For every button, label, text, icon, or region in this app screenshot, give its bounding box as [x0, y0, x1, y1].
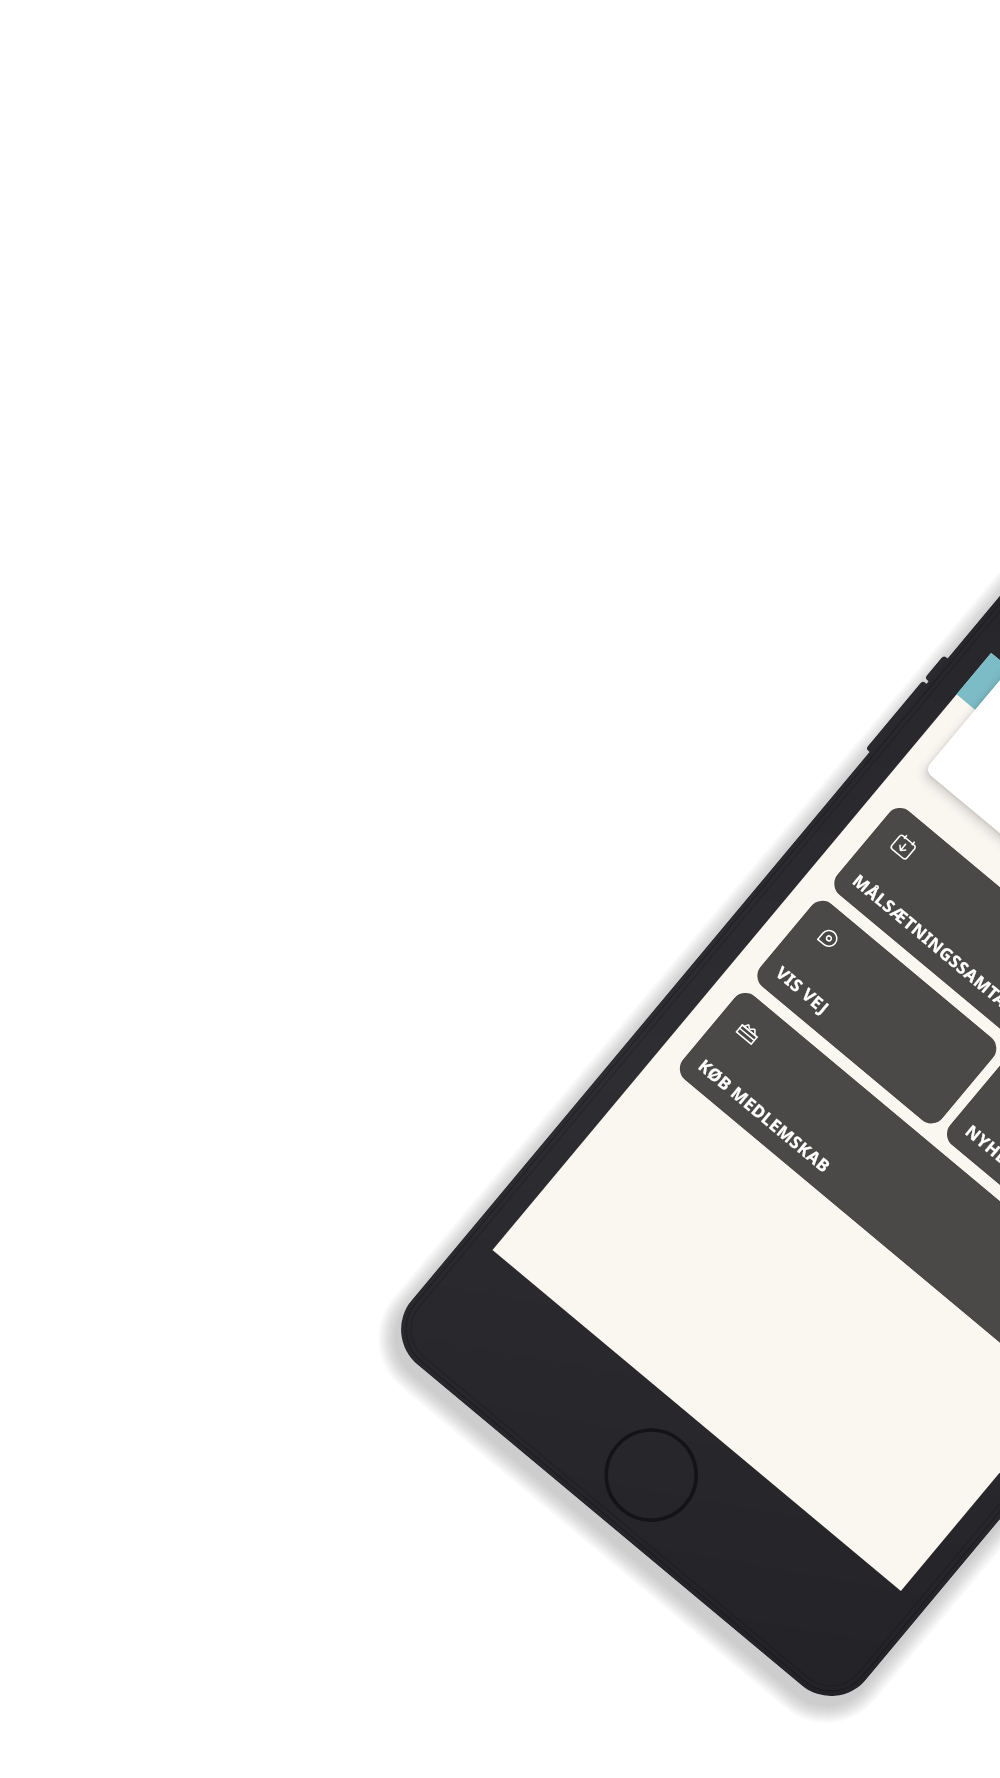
staticText: NYHEDER — [961, 1119, 1000, 1191]
button[interactable]: VIS VEJ — [751, 895, 1000, 1129]
button[interactable]: KØB MEDLEMSKAB — [674, 987, 1000, 1381]
staticText: KØB MEDLEMSKAB — [694, 1054, 836, 1178]
button[interactable] — [924, 658, 1000, 1081]
staticText: MÅLSÆTNINGSSAMTALE — [848, 869, 1000, 1025]
button[interactable]: MÅLSÆTNINGSSAMTALE — [828, 802, 1000, 1037]
staticText: VIS VEJ — [771, 961, 834, 1019]
button[interactable]: NYHEDER — [941, 1053, 1000, 1288]
